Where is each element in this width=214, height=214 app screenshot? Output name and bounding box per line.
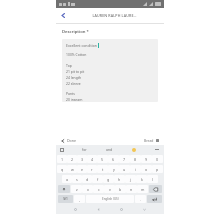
staticText: s [76,177,78,182]
staticText: g [107,177,110,182]
button[interactable]: Done [60,137,78,144]
staticText: y [113,167,115,172]
staticText: w [71,167,74,172]
button[interactable]: l [147,175,158,183]
staticText: 9 [145,157,148,162]
button[interactable]: Backspace [149,185,162,193]
staticText: Description * [62,29,89,35]
button[interactable]: for [81,146,88,153]
button[interactable]: Recents [141,206,148,213]
button[interactable]: z [71,185,82,193]
staticText: u [123,167,126,172]
staticText: 4 [91,157,94,162]
button[interactable]: 9 [141,155,152,163]
button[interactable]: and [105,146,114,153]
staticText: 7 [123,157,126,162]
button[interactable]: q [57,165,67,173]
staticText: 5 [101,157,104,162]
button[interactable]: a [62,175,72,183]
button[interactable]: Shift [58,185,70,193]
staticText: z [76,187,78,192]
staticText: h [118,177,121,182]
button[interactable]: 0 [152,155,163,163]
button[interactable]: k [136,175,147,183]
button[interactable]: g [103,175,114,183]
button[interactable]: 3 [77,155,87,163]
button[interactable]: Enter [147,195,162,203]
staticText: d [86,177,89,182]
button[interactable]: 4 [87,155,97,163]
button[interactable]: Clipboard [59,147,64,152]
staticText: k [141,177,143,182]
button[interactable]: b [115,185,126,193]
staticText: c [98,187,100,192]
staticText: LAUREN RALPH LAURE… [92,13,137,18]
button[interactable]: Back [58,10,69,21]
button[interactable]: v [104,185,115,193]
button[interactable]: x [82,185,93,193]
staticText: t [102,167,104,172]
staticText: v [109,187,111,192]
button[interactable]: e [77,165,87,173]
button[interactable]: j [125,175,136,183]
staticText: 0 [156,157,159,162]
staticText: Excellent condition [66,43,97,48]
button[interactable]: r [87,165,97,173]
button[interactable]: c [93,185,104,193]
button[interactable]: i [130,165,141,173]
button[interactable]: d [82,175,92,183]
button[interactable]: Home [118,206,125,213]
button[interactable]: 8 [130,155,141,163]
button[interactable]: Emoji [132,148,136,152]
button[interactable]: More suggestions [154,148,160,151]
staticText: q [61,167,64,172]
button[interactable]: p [152,165,163,173]
staticText: i [135,167,136,172]
button[interactable]: f [92,175,103,183]
staticText: 21 pit to pit [66,69,85,74]
staticText: 100% Cotton [66,52,87,57]
staticText: 8 [134,157,137,162]
staticText: and [106,147,113,152]
staticText: English (US) [102,197,119,201]
button[interactable]: t [97,165,108,173]
button[interactable]: , [74,195,85,203]
staticText: Pants [66,91,75,96]
staticText: x [87,187,89,192]
button[interactable]: w [67,165,77,173]
button[interactable]: Bread [143,137,160,144]
staticText: l [152,177,153,182]
button[interactable]: u [119,165,130,173]
button[interactable]: s [72,175,82,183]
staticText: e [81,167,84,172]
button[interactable]: o [141,165,152,173]
staticText: Bread [144,138,154,143]
staticText: p [156,167,159,172]
staticText: o [145,167,148,172]
staticText: 20 inseam [66,97,83,101]
staticText: , [79,197,80,202]
button[interactable]: 6 [108,155,119,163]
staticText: for [82,147,87,152]
staticText: 22 sleeve [66,81,81,86]
button[interactable]: m [137,185,148,193]
button[interactable]: n [126,185,137,193]
button[interactable]: h [114,175,125,183]
button[interactable]: 7 [119,155,130,163]
staticText: m [141,187,145,192]
button[interactable]: Excellent condition [62,39,158,102]
button[interactable]: 1 [57,155,67,163]
button[interactable]: English (US) [86,195,134,203]
staticText: 2 [71,157,74,162]
button[interactable]: !#1 [58,195,73,203]
button[interactable]: y [108,165,119,173]
staticText: r [91,167,93,172]
button[interactable]: 2 [67,155,77,163]
staticText: n [130,187,133,192]
button[interactable]: Back [95,206,102,213]
button[interactable]: 5 [97,155,108,163]
staticText: 1 [61,157,64,162]
staticText: 6 [112,157,115,162]
button[interactable]: Keyboard switch [72,206,79,213]
